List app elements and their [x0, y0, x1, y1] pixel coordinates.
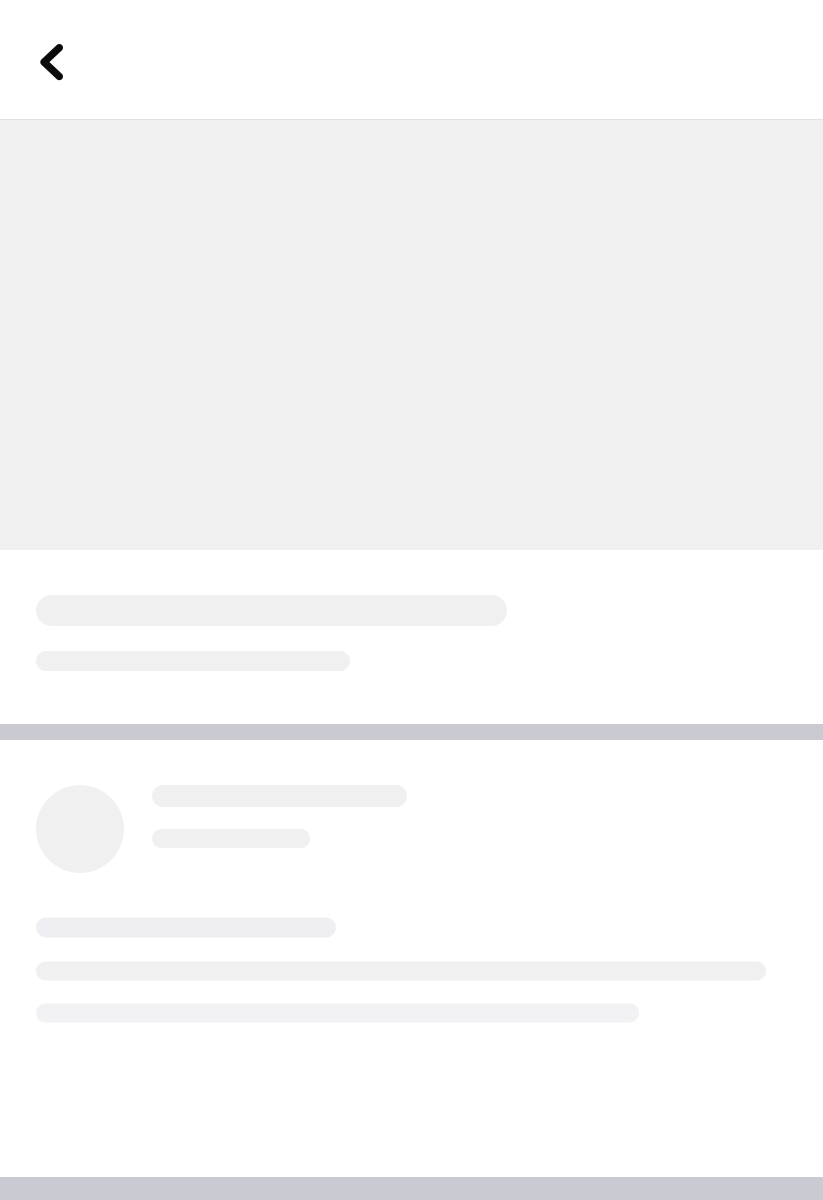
button[interactable]: Back [22, 28, 84, 90]
